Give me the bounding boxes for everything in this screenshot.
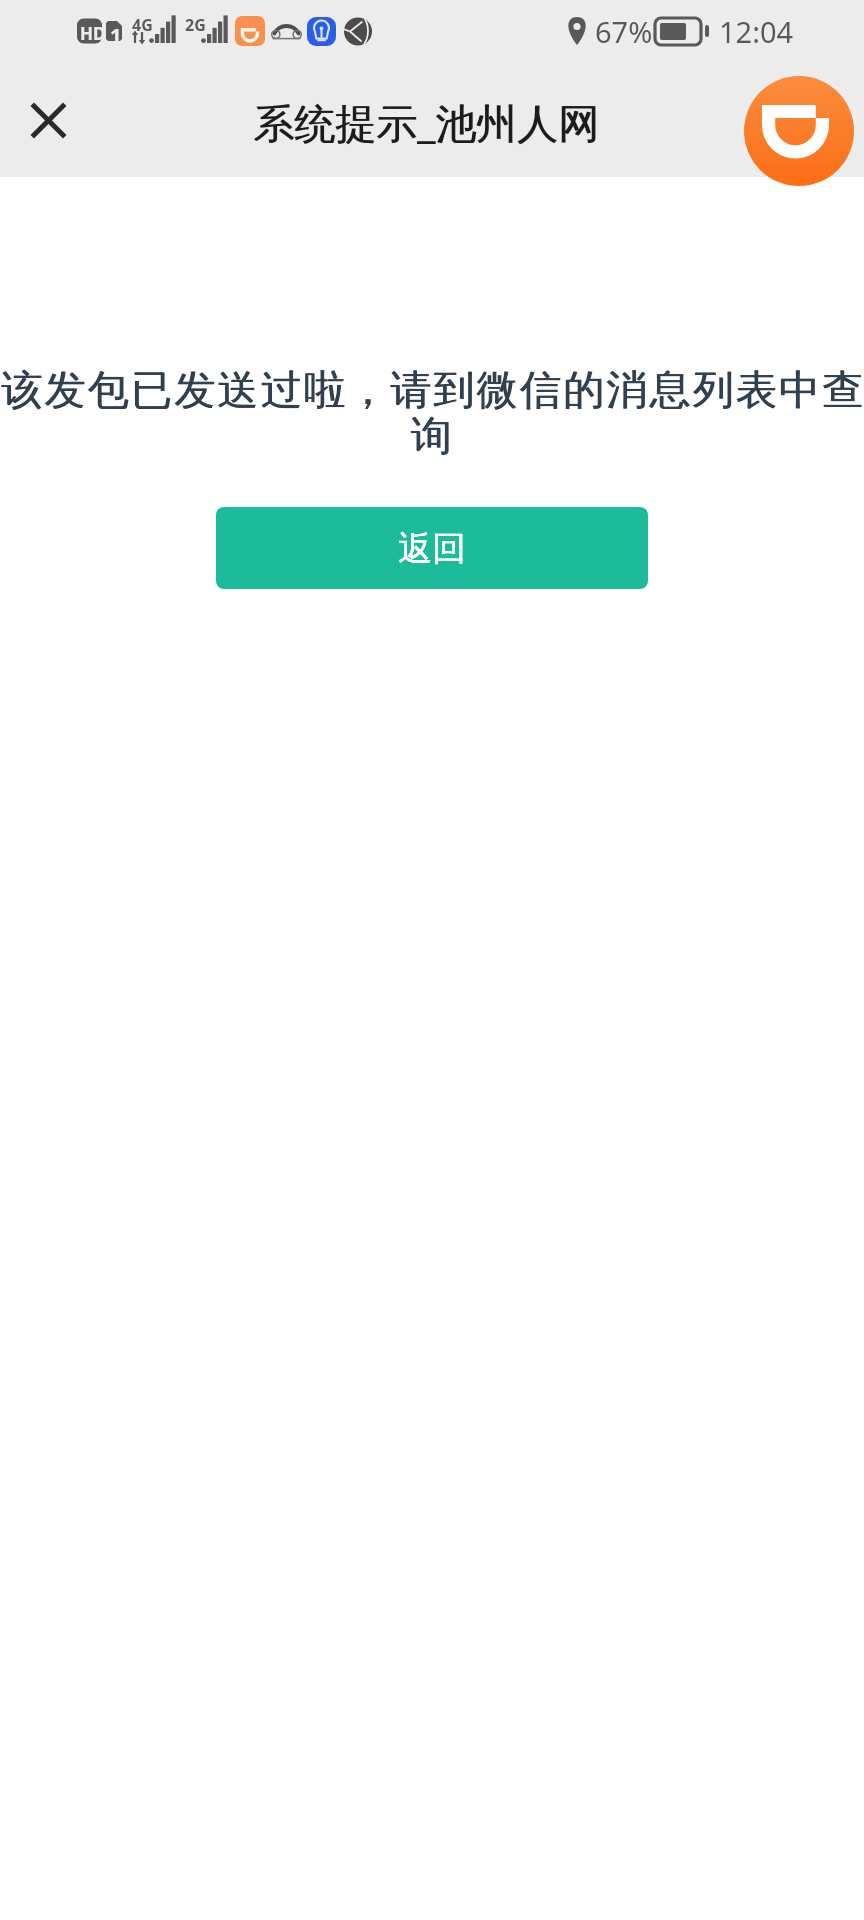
staticText: 4G [132,14,153,36]
staticText: 返回 [398,527,466,570]
staticText: 系统提示_池州人网 [254,94,600,150]
staticText: 2G [185,14,206,36]
staticText: 67% [595,12,653,51]
staticText: 12:04 [719,12,794,51]
staticText: 该发包已发送过啦，请到微信的消息列表中查 询 [0,365,864,463]
staticText: 1 [110,22,122,49]
button[interactable]: DiDi [744,76,854,186]
staticText: 返回 [398,527,466,570]
button[interactable]: 返回 [216,507,648,589]
staticText: 系统提示_池州人网 [253,94,599,150]
staticText: 该发包已发送过啦，请到微信的消息列表中查 询 [1,365,864,463]
staticText: HD [80,22,106,45]
button[interactable]: Close [8,80,88,160]
